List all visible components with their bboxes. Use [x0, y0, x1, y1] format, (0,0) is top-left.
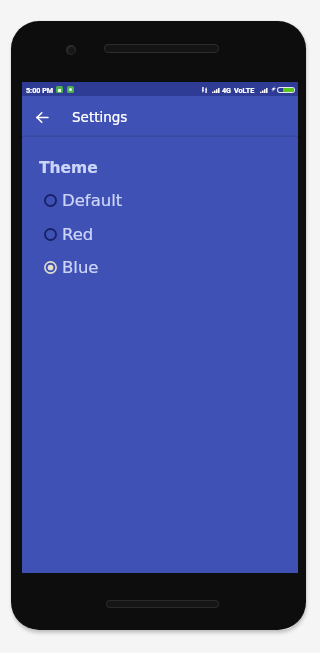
staticText: VoLTE: [234, 86, 255, 94]
staticText: 4G: [222, 86, 232, 94]
staticText: Red: [62, 225, 94, 244]
staticText: Theme: [39, 159, 98, 177]
button[interactable]: Red: [22, 218, 298, 251]
staticText: Blue: [62, 258, 99, 277]
button[interactable]: Default: [22, 184, 298, 217]
staticText: Default: [62, 191, 123, 210]
staticText: Settings: [72, 109, 128, 125]
button[interactable]: Blue: [22, 251, 298, 284]
staticText: 5:00 PM: [26, 86, 54, 94]
button[interactable]: Back: [29, 104, 55, 130]
